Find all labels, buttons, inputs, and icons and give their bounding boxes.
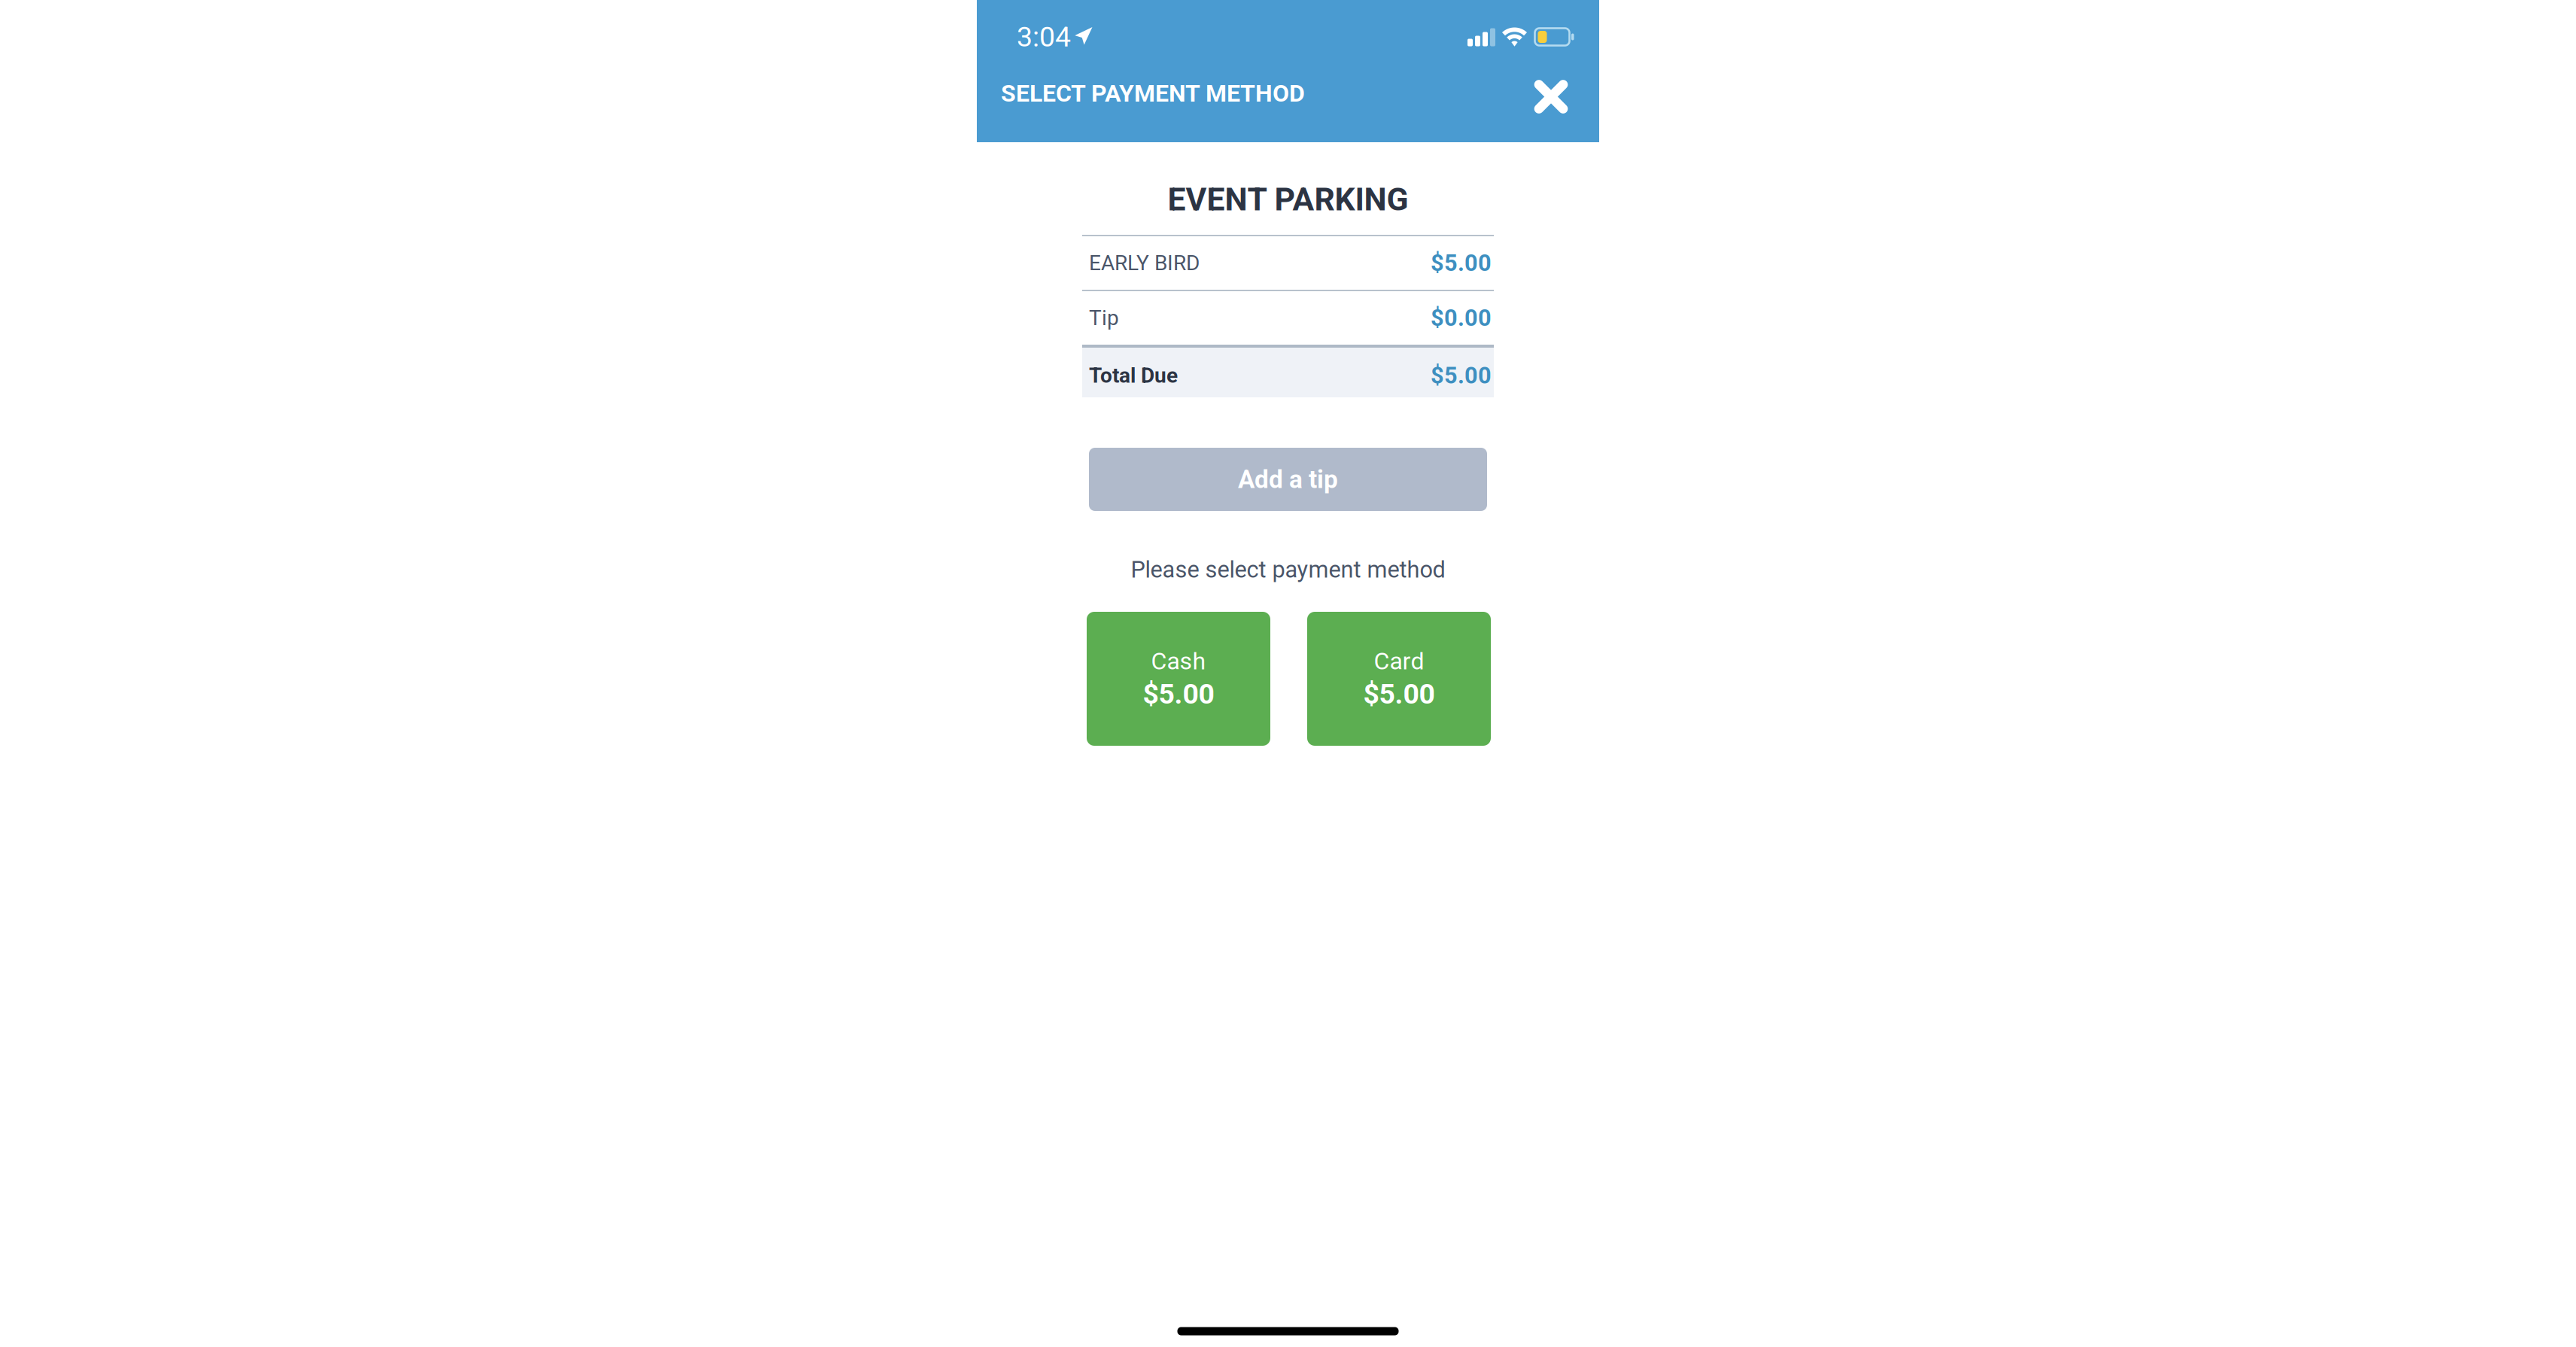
staticText: Card (1374, 647, 1424, 675)
staticText: Cash (1151, 647, 1206, 675)
staticText: $5.00 (1363, 678, 1435, 710)
button[interactable]: Close (1524, 70, 1578, 124)
button[interactable]: Card (1307, 612, 1491, 746)
staticText: Please select payment method (1131, 556, 1445, 583)
staticText: $5.00 (1431, 362, 1492, 389)
staticText: EVENT PARKING (1168, 181, 1408, 218)
staticText: Add a tip (1238, 465, 1338, 494)
staticText: 3:04 (1017, 20, 1071, 53)
staticText: SELECT PAYMENT METHOD (1001, 79, 1305, 107)
staticText: Tip (1089, 306, 1119, 330)
staticText: Total Due (1089, 363, 1178, 388)
staticText: EARLY BIRD (1089, 251, 1200, 275)
staticText: $5.00 (1431, 249, 1492, 276)
staticText: $0.00 (1431, 304, 1492, 331)
button[interactable]: Cash (1087, 612, 1270, 746)
button[interactable]: Add a tip (1089, 448, 1487, 511)
staticText: $5.00 (1143, 678, 1214, 710)
